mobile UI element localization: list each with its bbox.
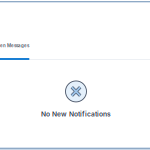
button[interactable]: Unseen Messages	[0, 43, 29, 60]
staticText: Unseen Messages	[0, 43, 29, 48]
staticText: No New Notifications	[41, 110, 111, 118]
